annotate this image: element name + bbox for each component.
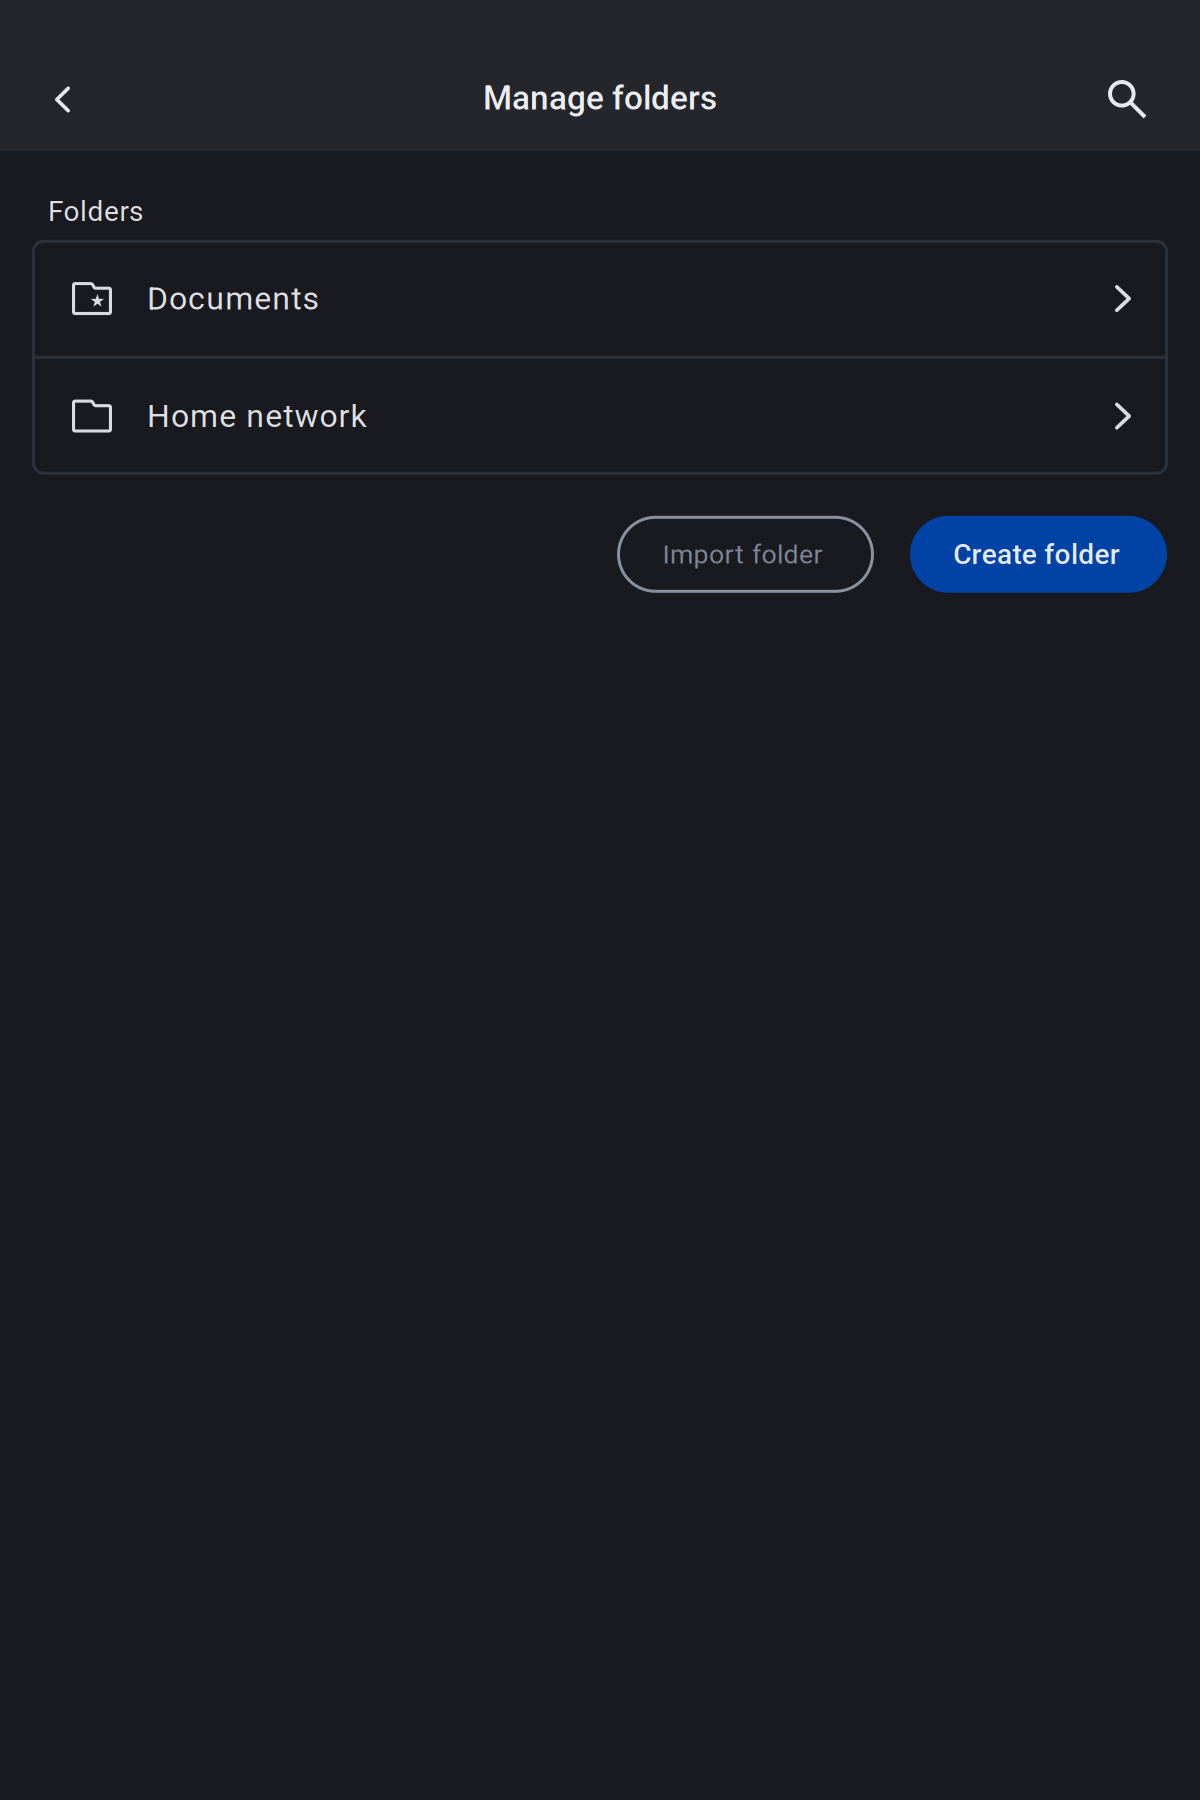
staticText: Create folder [953, 538, 1120, 571]
button[interactable]: Home network [32, 357, 1168, 475]
button[interactable]: Create folder [910, 516, 1167, 593]
button[interactable]: Search [1052, 48, 1200, 148]
staticText: Folders [48, 195, 143, 228]
staticText: Home network [147, 397, 366, 435]
staticText: Documents [147, 280, 319, 317]
button[interactable]: Documents [32, 240, 1168, 357]
button[interactable]: Back [0, 48, 124, 148]
button[interactable]: Import folder [617, 516, 874, 593]
staticText: Manage folders [483, 78, 717, 118]
staticText: Import folder [662, 539, 822, 570]
